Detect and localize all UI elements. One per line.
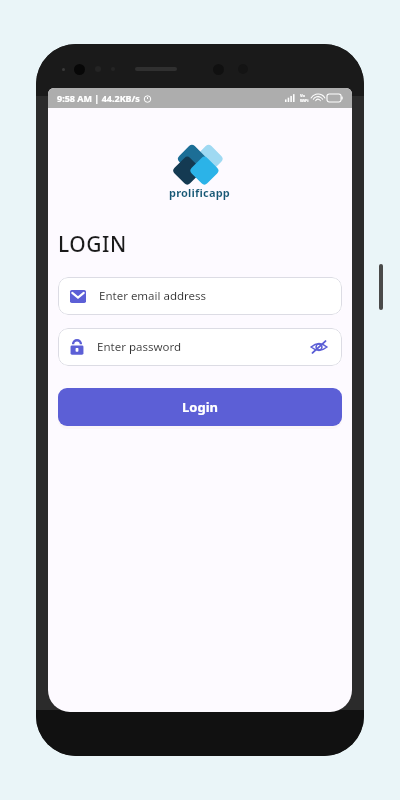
button[interactable]: Login [58,388,342,426]
button[interactable]: Enter email address [58,277,342,315]
staticText: Vo WiFi [300,93,309,103]
staticText: 9:58 AM | 44.2KB/s [57,92,140,104]
staticText: prolificapp [169,185,231,200]
button[interactable]: Enter password [58,328,342,366]
button[interactable]: Show password [308,336,330,358]
staticText: Enter email address [99,288,207,304]
staticText: Enter password [97,339,182,355]
staticText: LOGIN [58,230,127,259]
staticText: Login [182,398,218,416]
